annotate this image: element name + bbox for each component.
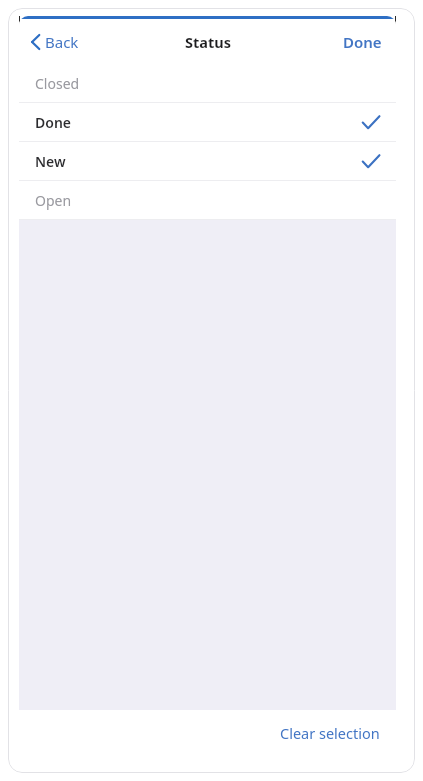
button[interactable]: Done bbox=[335, 26, 390, 58]
button[interactable]: Done bbox=[19, 103, 396, 141]
button[interactable]: Open bbox=[19, 181, 396, 219]
staticText: Done bbox=[343, 32, 382, 52]
staticText: New bbox=[35, 152, 362, 171]
button[interactable]: Clear selection bbox=[272, 715, 388, 751]
staticText: Status bbox=[185, 32, 231, 52]
staticText: Done bbox=[35, 113, 362, 132]
staticText: Open bbox=[35, 191, 380, 210]
button[interactable]: Closed bbox=[19, 64, 396, 102]
button[interactable]: New bbox=[19, 142, 396, 180]
staticText: Back bbox=[45, 32, 79, 52]
staticText: Clear selection bbox=[280, 723, 380, 743]
staticText: Closed bbox=[35, 74, 380, 93]
button[interactable]: Back bbox=[25, 26, 85, 58]
